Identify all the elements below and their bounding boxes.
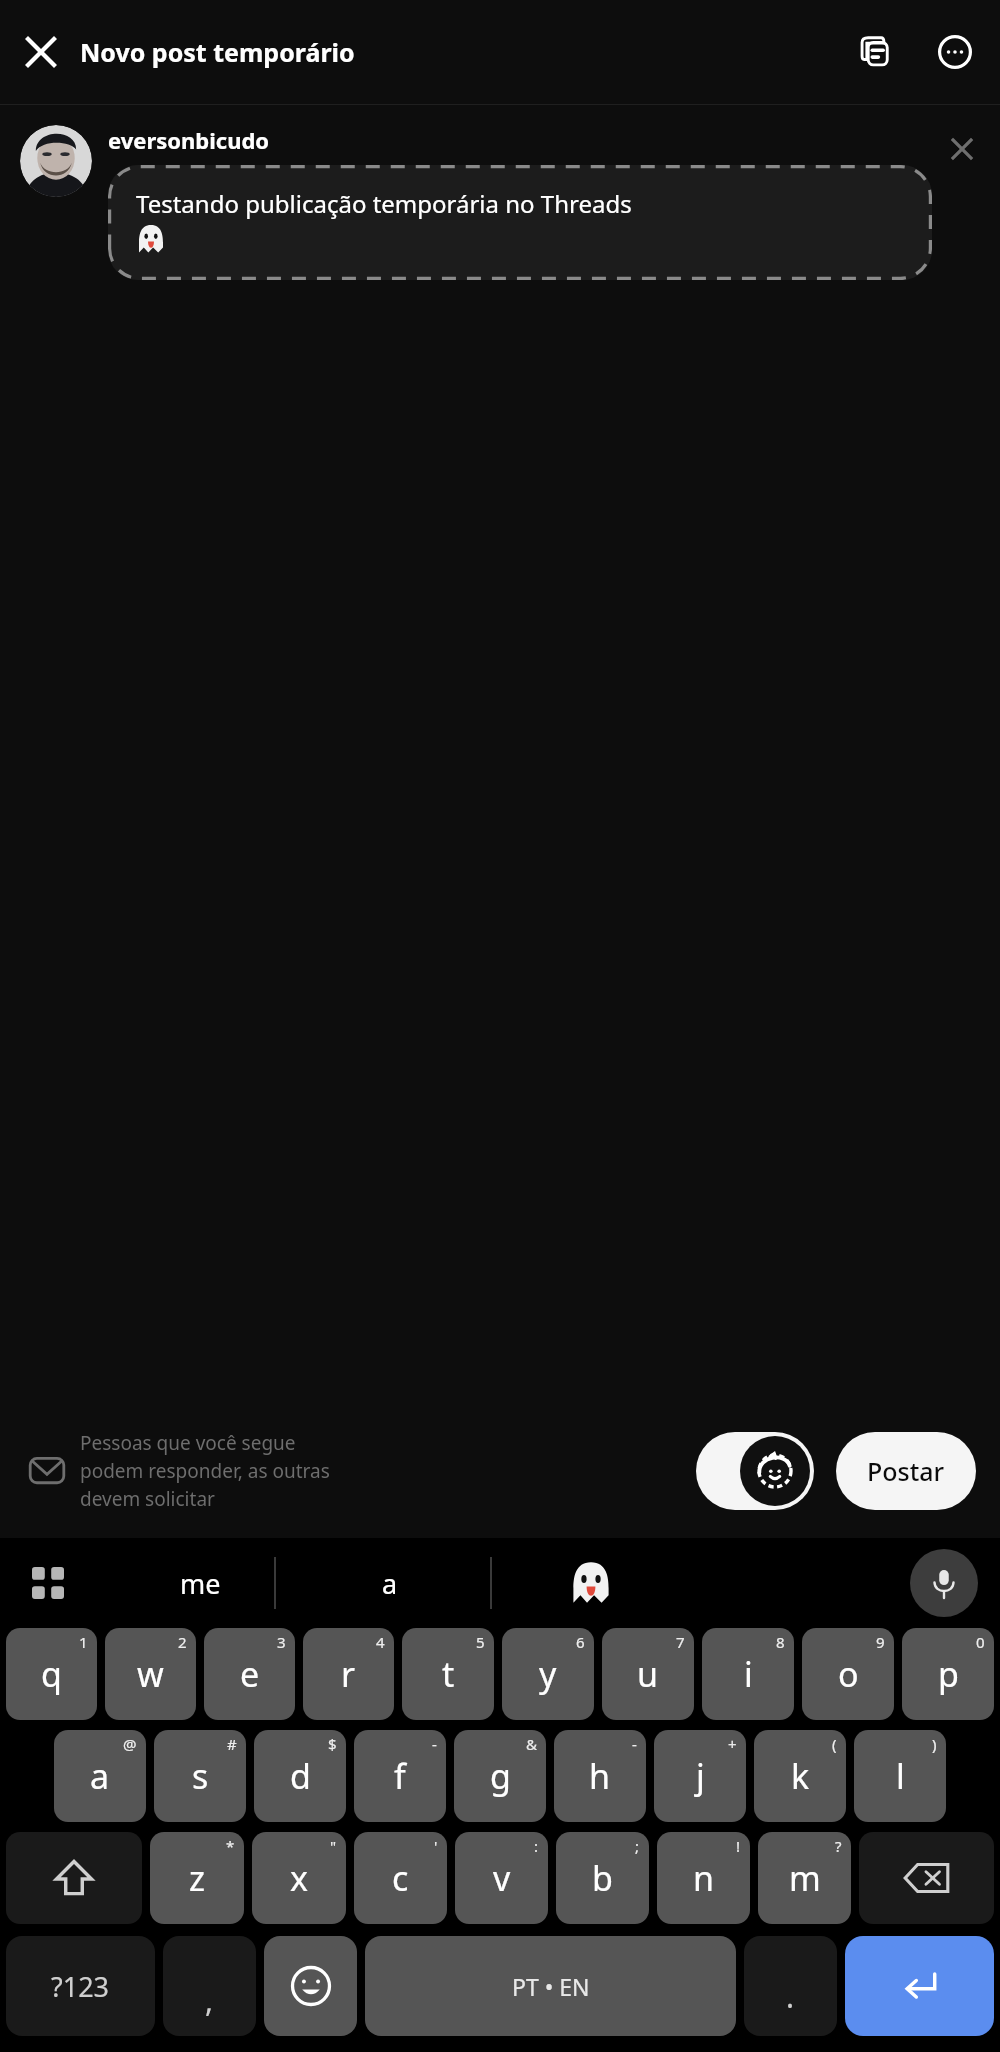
staticText: : (534, 1836, 539, 1856)
button[interactable]: Shift (6, 1832, 142, 1924)
staticText: w (137, 1651, 164, 1697)
button[interactable]: Emoji fantasma (506, 1544, 676, 1622)
button[interactable]: + (654, 1730, 746, 1822)
button[interactable]: ' (354, 1832, 447, 1924)
staticText: p (938, 1651, 959, 1697)
staticText: s (192, 1753, 209, 1799)
button[interactable]: Ponto (744, 1936, 837, 2036)
button[interactable]: 0 (902, 1628, 994, 1720)
button[interactable]: 3 (204, 1628, 295, 1720)
button[interactable]: Emoji (264, 1936, 357, 2036)
button[interactable]: Apagar (859, 1832, 994, 1924)
staticText: u (637, 1651, 659, 1697)
staticText: ( (832, 1734, 837, 1754)
staticText: + (728, 1734, 737, 1754)
button[interactable]: Mais opções (926, 23, 984, 81)
staticText: me (180, 1565, 221, 1602)
staticText: ; (635, 1836, 640, 1856)
button[interactable]: # (154, 1730, 246, 1822)
button[interactable]: 9 (802, 1628, 894, 1720)
button[interactable]: 8 (702, 1628, 794, 1720)
button[interactable]: ! (657, 1832, 750, 1924)
staticText: 3 (277, 1632, 286, 1652)
staticText: j (696, 1753, 705, 1799)
button[interactable]: @ (54, 1730, 146, 1822)
staticText: PT • EN (512, 1971, 590, 2002)
staticText: o (838, 1651, 859, 1697)
staticText: Postar (867, 1454, 945, 1488)
button[interactable]: $ (254, 1730, 346, 1822)
button[interactable]: ? (758, 1832, 851, 1924)
staticText: Pessoas que você segue podem responder, … (80, 1430, 330, 1512)
button[interactable]: Menu do teclado (18, 1553, 78, 1613)
staticText: # (227, 1734, 237, 1754)
staticText: - (432, 1734, 437, 1754)
button[interactable]: : (455, 1832, 548, 1924)
button[interactable]: * (150, 1832, 244, 1924)
button[interactable]: a (290, 1544, 490, 1622)
staticText: f (394, 1753, 406, 1799)
staticText: y (539, 1651, 557, 1697)
staticText: * (226, 1836, 235, 1856)
button[interactable]: 4 (303, 1628, 394, 1720)
staticText: . (786, 1976, 795, 2017)
button[interactable]: Adicionar à thread (846, 23, 904, 81)
button[interactable]: - (354, 1730, 446, 1822)
button[interactable]: me (110, 1544, 290, 1622)
staticText: k (791, 1753, 810, 1799)
button[interactable]: 2 (105, 1628, 196, 1720)
staticText: h (589, 1753, 611, 1799)
staticText: 8 (776, 1632, 785, 1652)
button[interactable]: ?123 (6, 1936, 155, 2036)
button[interactable]: Fechar (10, 21, 72, 83)
staticText: eversonbicudo (108, 125, 270, 155)
staticText: & (526, 1734, 537, 1754)
staticText: d (290, 1753, 311, 1799)
button[interactable]: Pessoas que você segue podem responder, … (26, 1430, 696, 1512)
staticText: a (90, 1753, 110, 1799)
button[interactable]: - (554, 1730, 646, 1822)
button[interactable]: Testando publicação temporária no Thread… (108, 165, 932, 280)
staticText: 0 (976, 1632, 985, 1652)
staticText: ' (434, 1836, 438, 1856)
button[interactable]: 6 (502, 1628, 594, 1720)
button[interactable]: PT • EN (365, 1936, 736, 2036)
button[interactable]: & (454, 1730, 546, 1822)
staticText: e (240, 1651, 260, 1697)
staticText: g (490, 1753, 511, 1799)
staticText: m (789, 1855, 821, 1901)
button[interactable]: Remover (940, 127, 984, 171)
staticText: ? (835, 1836, 842, 1856)
button[interactable]: Voz (910, 1549, 978, 1617)
staticText: c (392, 1855, 409, 1901)
staticText: b (592, 1855, 613, 1901)
staticText: 7 (676, 1632, 685, 1652)
staticText: " (330, 1836, 337, 1856)
staticText: l (896, 1753, 905, 1799)
button[interactable]: Postar (836, 1432, 976, 1510)
button[interactable]: 7 (602, 1628, 694, 1720)
staticText: , (205, 1980, 214, 2021)
staticText: 1 (79, 1632, 88, 1652)
staticText: - (632, 1734, 637, 1754)
button[interactable]: 1 (6, 1628, 97, 1720)
button[interactable]: Vírgula (163, 1936, 256, 2036)
staticText: t (442, 1651, 455, 1697)
staticText: z (189, 1855, 205, 1901)
staticText: 2 (178, 1632, 187, 1652)
button[interactable]: ; (556, 1832, 649, 1924)
button[interactable]: ( (754, 1730, 846, 1822)
staticText: q (41, 1651, 62, 1697)
staticText: ?123 (51, 1968, 110, 2005)
button[interactable]: Post temporário (696, 1432, 814, 1510)
staticText: $ (328, 1734, 337, 1754)
button[interactable]: Enter (845, 1936, 994, 2036)
staticText: 5 (476, 1632, 485, 1652)
staticText: Testando publicação temporária no Thread… (136, 187, 632, 220)
button[interactable]: 5 (402, 1628, 494, 1720)
button[interactable]: ) (854, 1730, 946, 1822)
staticText: r (341, 1651, 356, 1697)
staticText: 4 (376, 1632, 385, 1652)
button[interactable]: " (252, 1832, 346, 1924)
staticText: 6 (576, 1632, 585, 1652)
